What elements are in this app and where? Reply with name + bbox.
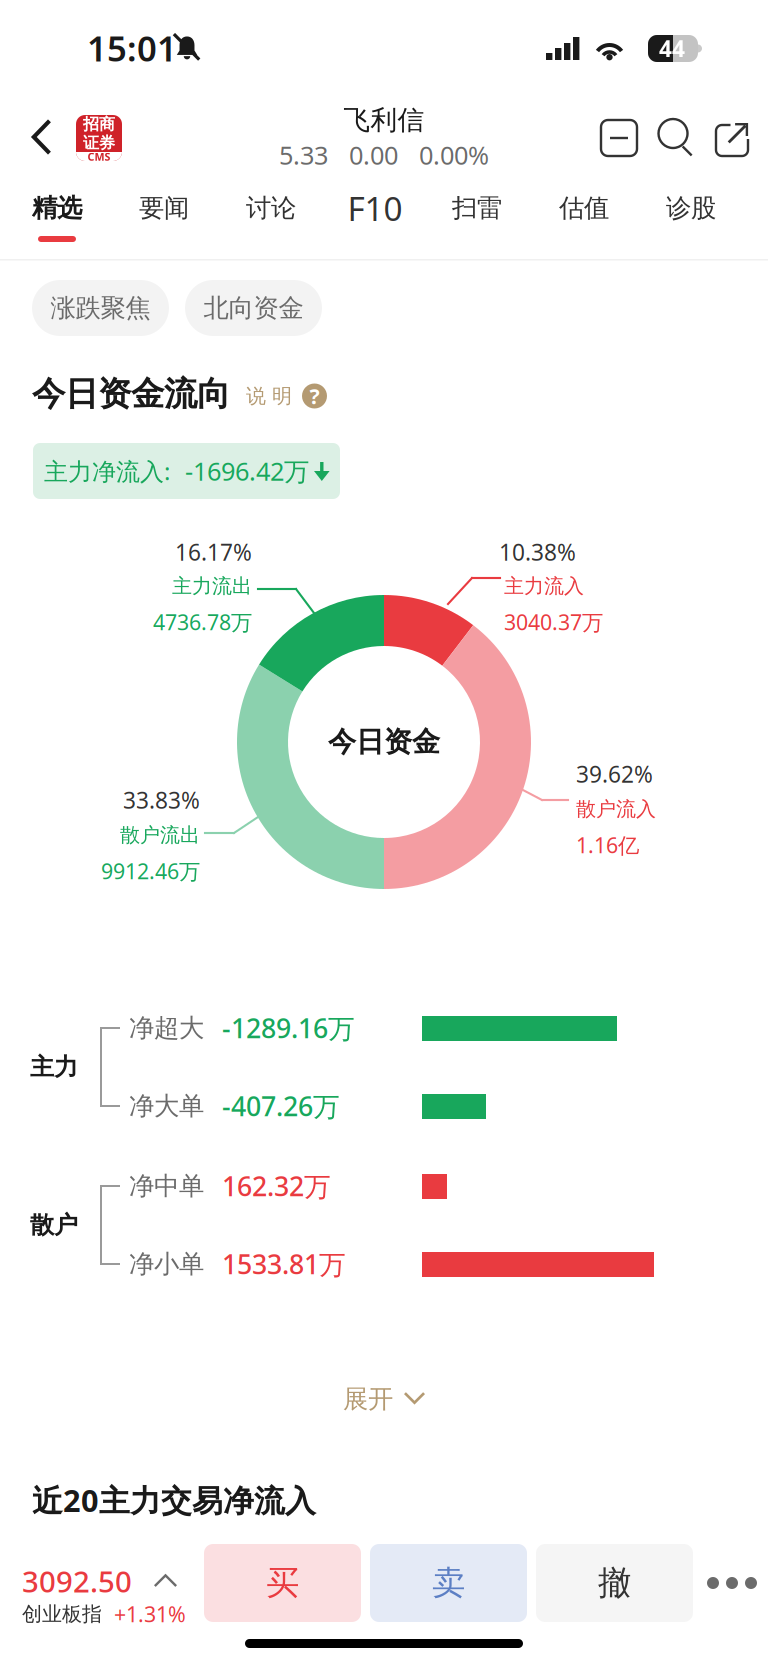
staticText: 3040.37万 bbox=[504, 608, 603, 636]
staticText: 讨论 bbox=[246, 192, 296, 223]
staticText: 精选 bbox=[32, 192, 82, 223]
staticText: 1533.81万 bbox=[222, 1246, 346, 1282]
button[interactable]: 展开 bbox=[304, 1371, 464, 1427]
staticText: 飞利信 bbox=[343, 104, 424, 136]
staticText: 撤 bbox=[598, 1562, 631, 1603]
staticText: 9912.46万 bbox=[101, 857, 200, 885]
button[interactable]: 讨论 bbox=[219, 182, 323, 258]
button[interactable]: 搜索 bbox=[650, 107, 704, 169]
staticText: 北向资金 bbox=[203, 292, 303, 323]
staticText: CMS bbox=[87, 149, 110, 164]
staticText: 买 bbox=[266, 1562, 299, 1603]
staticText: 散户流出 bbox=[120, 823, 200, 847]
staticText: 主力净流入: bbox=[44, 455, 170, 487]
staticText: 1.16亿 bbox=[576, 831, 639, 859]
staticText: 招商 bbox=[83, 114, 115, 134]
staticText: 44 bbox=[659, 33, 685, 63]
staticText: ? bbox=[309, 382, 319, 410]
staticText: 162.32万 bbox=[222, 1168, 331, 1204]
button[interactable]: 要闻 bbox=[112, 182, 216, 258]
button[interactable]: F10 bbox=[323, 182, 427, 258]
staticText: 诊股 bbox=[666, 192, 716, 223]
button[interactable]: 招商证券 bbox=[70, 107, 128, 169]
button[interactable]: 更多 bbox=[700, 1544, 764, 1622]
staticText: 创业板指 bbox=[22, 1602, 102, 1626]
staticText: 今日资金流向 bbox=[32, 373, 230, 414]
staticText: 散户流入 bbox=[576, 797, 656, 821]
staticText: 涨跌聚焦 bbox=[50, 292, 150, 323]
staticText: 16.17% bbox=[175, 537, 252, 567]
staticText: 39.62% bbox=[576, 759, 653, 789]
button[interactable]: 卖 bbox=[370, 1544, 527, 1622]
button[interactable]: 买 bbox=[204, 1544, 361, 1622]
staticText: 净中单 bbox=[129, 1170, 204, 1201]
staticText: 15:01 bbox=[87, 25, 177, 71]
staticText: 净大单 bbox=[129, 1090, 204, 1121]
staticText: 主力流入 bbox=[504, 574, 584, 598]
staticText: 今日资金 bbox=[328, 725, 440, 759]
button[interactable]: 估值 bbox=[532, 182, 636, 258]
button[interactable]: 精选 bbox=[5, 182, 109, 258]
staticText: F10 bbox=[347, 186, 402, 230]
staticText: 33.83% bbox=[123, 785, 200, 815]
staticText: 5.33 0.00 0.00% bbox=[279, 138, 489, 172]
staticText: +1.31% bbox=[114, 1600, 186, 1628]
staticText: -407.26万 bbox=[222, 1088, 340, 1124]
button[interactable]: 撤 bbox=[536, 1544, 693, 1622]
staticText: 净小单 bbox=[129, 1248, 204, 1279]
button[interactable]: 自选 bbox=[592, 107, 646, 169]
staticText: 扫雷 bbox=[452, 192, 502, 223]
staticText: 散户 bbox=[30, 1210, 78, 1240]
staticText: 展开 bbox=[343, 1383, 393, 1414]
button[interactable]: 诊股 bbox=[639, 182, 743, 258]
button[interactable]: 扫雷 bbox=[425, 182, 529, 258]
button[interactable]: 分享 bbox=[706, 107, 760, 169]
staticText: 近20主力交易净流入 bbox=[32, 1480, 316, 1520]
staticText: 3092.50 bbox=[22, 1561, 132, 1600]
staticText: 证券 bbox=[83, 133, 115, 153]
staticText: 主力流出 bbox=[172, 574, 252, 598]
staticText: 要闻 bbox=[139, 192, 189, 223]
button[interactable]: 北向资金 bbox=[185, 280, 322, 336]
staticText: 说 明 bbox=[246, 384, 292, 408]
staticText: 4736.78万 bbox=[153, 608, 252, 636]
button[interactable]: 3092.50 bbox=[22, 1560, 212, 1638]
button[interactable]: 返回 bbox=[10, 100, 72, 174]
staticText: 10.38% bbox=[499, 537, 576, 567]
button[interactable]: 涨跌聚焦 bbox=[32, 280, 169, 336]
staticText: 卖 bbox=[432, 1562, 465, 1603]
staticText: -1289.16万 bbox=[222, 1010, 355, 1046]
staticText: 净超大 bbox=[129, 1012, 204, 1043]
staticText: 估值 bbox=[559, 192, 609, 223]
button[interactable]: 说明 bbox=[246, 372, 382, 420]
staticText: 主力 bbox=[30, 1052, 78, 1082]
staticText: -1696.42万 bbox=[185, 454, 309, 488]
